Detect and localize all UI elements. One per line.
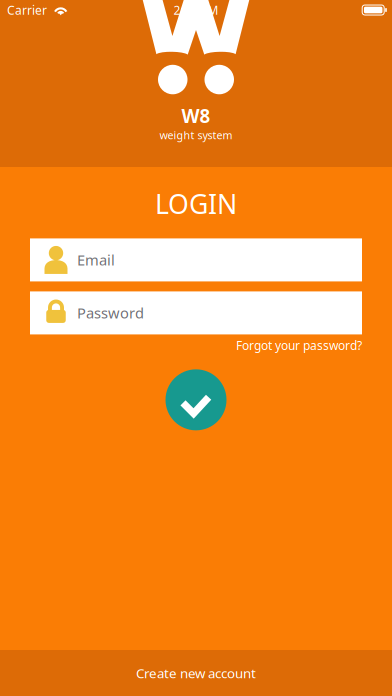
staticText: 2:09 PM: [173, 2, 218, 18]
button[interactable]: Email: [30, 238, 362, 281]
button[interactable]: Forgot your password?: [236, 334, 362, 353]
button[interactable]: Password: [30, 291, 362, 334]
staticText: weight system: [159, 128, 232, 142]
staticText: Email: [77, 250, 115, 270]
staticText: W8: [181, 103, 210, 128]
staticText: Carrier: [7, 2, 47, 18]
button[interactable]: Sign in: [165, 369, 226, 430]
staticText: Create new account: [136, 664, 256, 682]
staticText: Password: [77, 303, 144, 323]
staticText: Forgot your password?: [236, 337, 362, 353]
staticText: LOGIN: [155, 186, 237, 221]
button[interactable]: Create new account: [0, 650, 392, 696]
